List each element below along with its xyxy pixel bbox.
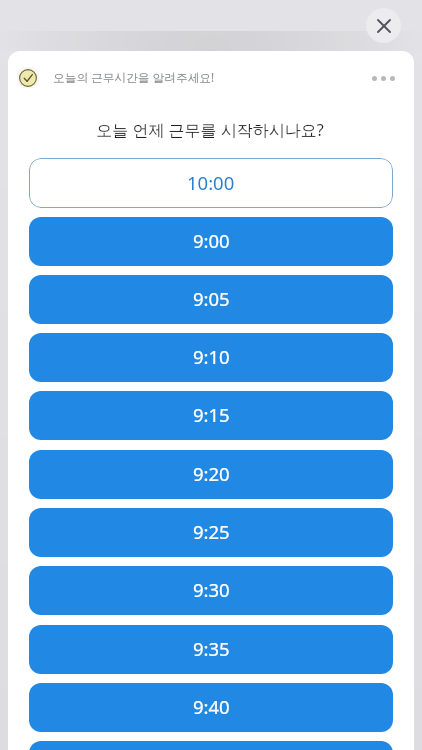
staticText: 9:10 — [193, 344, 230, 369]
button[interactable]: 9:05 — [29, 275, 393, 324]
button[interactable]: Close — [366, 8, 401, 43]
button[interactable]: 9:40 — [29, 683, 393, 732]
staticText: 9:40 — [193, 694, 230, 719]
staticText: 9:05 — [193, 286, 230, 311]
button[interactable]: 9:10 — [29, 333, 393, 382]
button[interactable]: 9:35 — [29, 625, 393, 674]
button[interactable]: 9:25 — [29, 508, 393, 557]
button[interactable]: 9:00 — [29, 217, 393, 266]
staticText: 9:00 — [193, 228, 230, 253]
staticText: 9:20 — [193, 461, 230, 486]
staticText: 9:35 — [193, 636, 230, 661]
staticText: 9:15 — [193, 402, 230, 427]
staticText: 오늘의 근무시간을 알려주세요! — [53, 69, 215, 85]
button[interactable]: 9:30 — [29, 566, 393, 615]
button[interactable]: More options — [364, 59, 402, 97]
staticText: 10:00 — [187, 170, 235, 195]
button[interactable]: 9:45 — [29, 741, 393, 750]
staticText: 9:30 — [193, 577, 230, 602]
button[interactable]: 9:15 — [29, 391, 393, 440]
staticText: 9:25 — [193, 519, 230, 544]
staticText: 오늘 언제 근무를 시작하시나요? — [96, 119, 324, 141]
button[interactable]: 9:20 — [29, 450, 393, 499]
button[interactable]: 10:00 — [29, 158, 393, 208]
